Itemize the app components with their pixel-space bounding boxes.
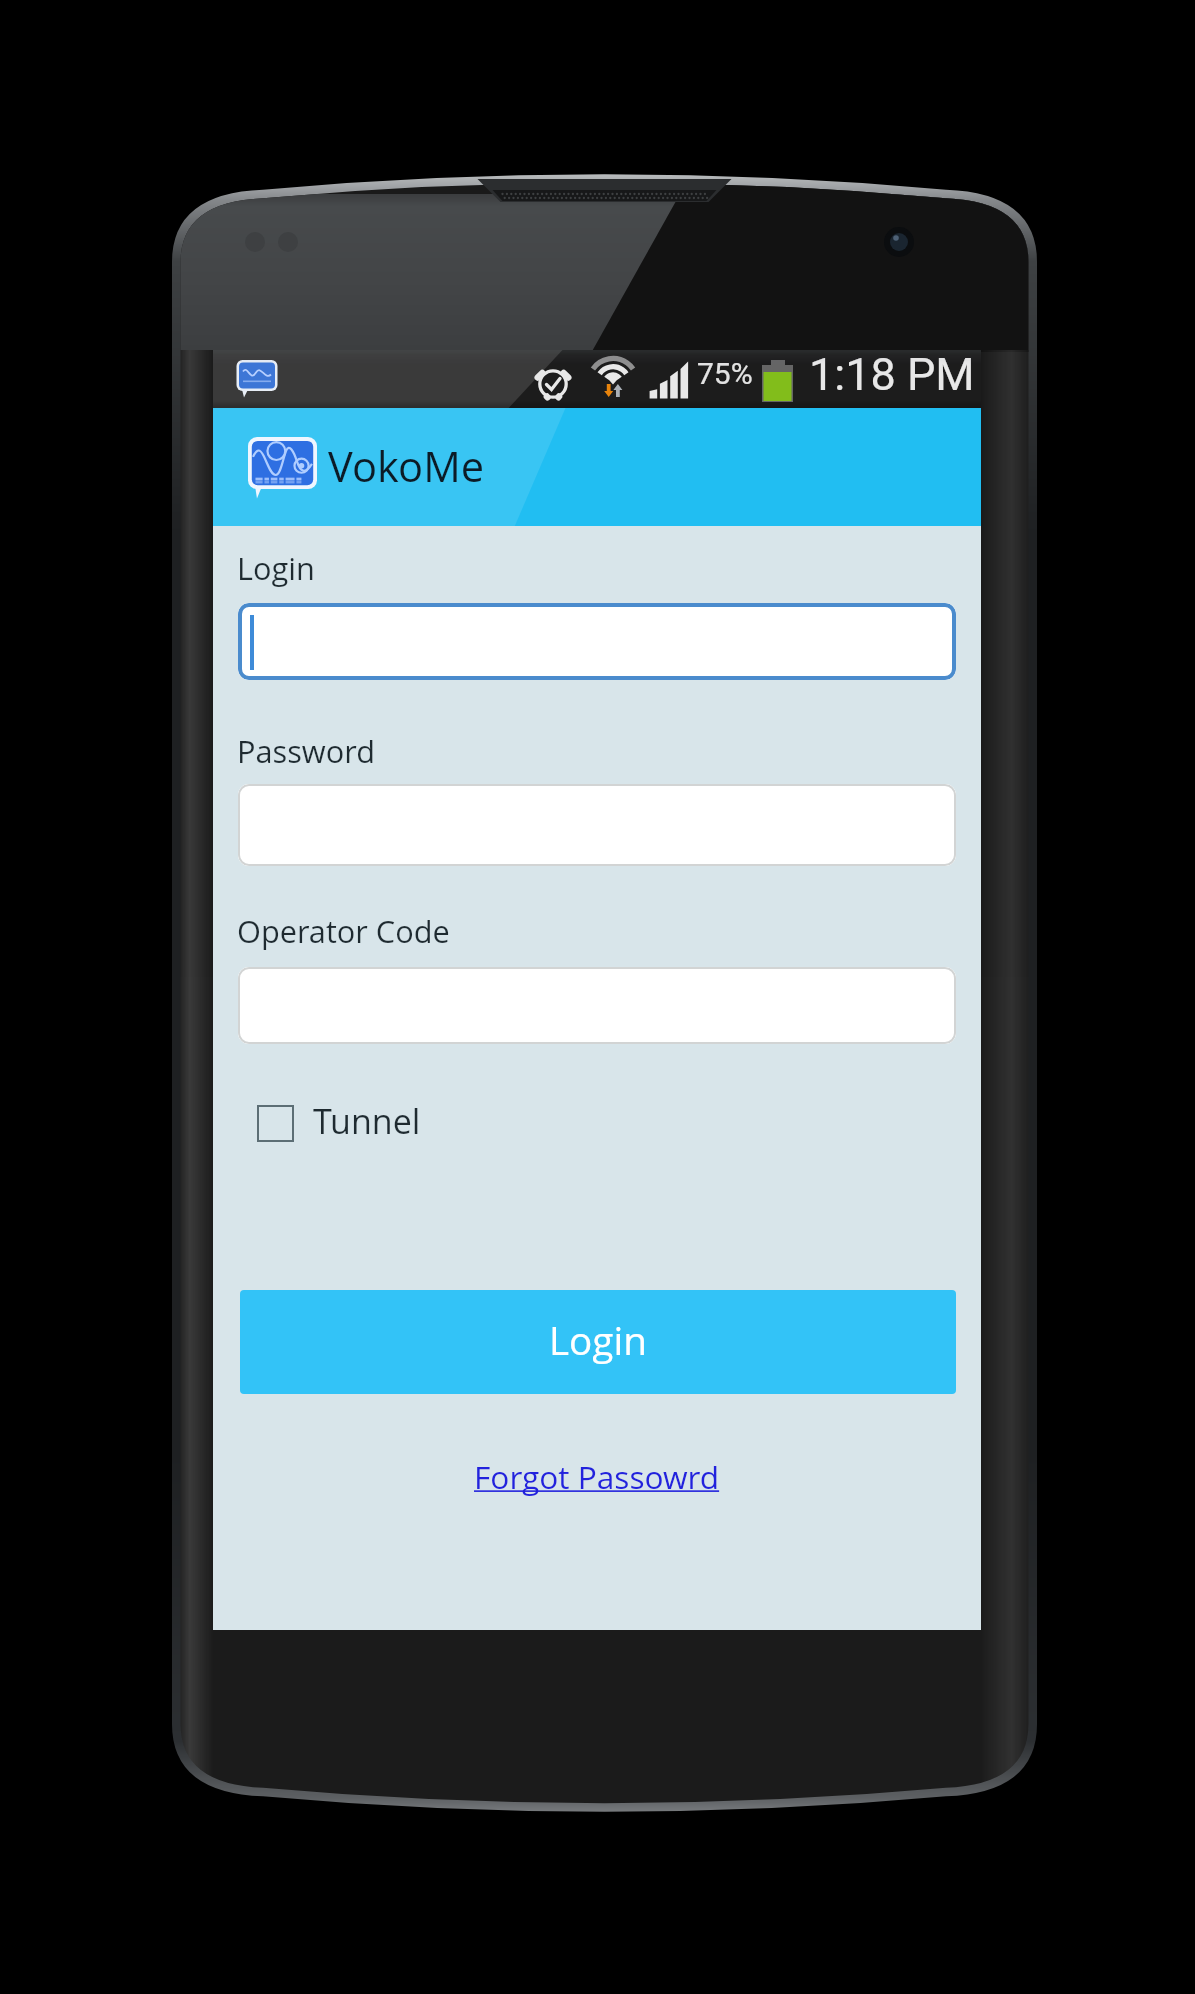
staticText: Operator Code <box>237 910 450 952</box>
staticText: 75% <box>697 356 753 391</box>
button[interactable]: Login <box>240 1290 956 1394</box>
staticText: Login <box>237 547 315 589</box>
button[interactable] <box>238 967 956 1044</box>
staticText: VokoMe <box>328 438 485 495</box>
staticText: 1:18 PM <box>809 348 975 401</box>
other: VokoMe logo <box>248 437 317 498</box>
button[interactable] <box>238 603 956 680</box>
staticText: Login <box>549 1314 647 1367</box>
button[interactable] <box>238 784 956 866</box>
button[interactable]: Tunnel <box>253 1098 453 1150</box>
staticText: Forgot Passowrd <box>474 1455 720 1498</box>
staticText: Tunnel <box>313 1098 421 1144</box>
button[interactable]: Forgot Passowrd <box>468 1448 726 1504</box>
staticText: Password <box>237 730 375 772</box>
